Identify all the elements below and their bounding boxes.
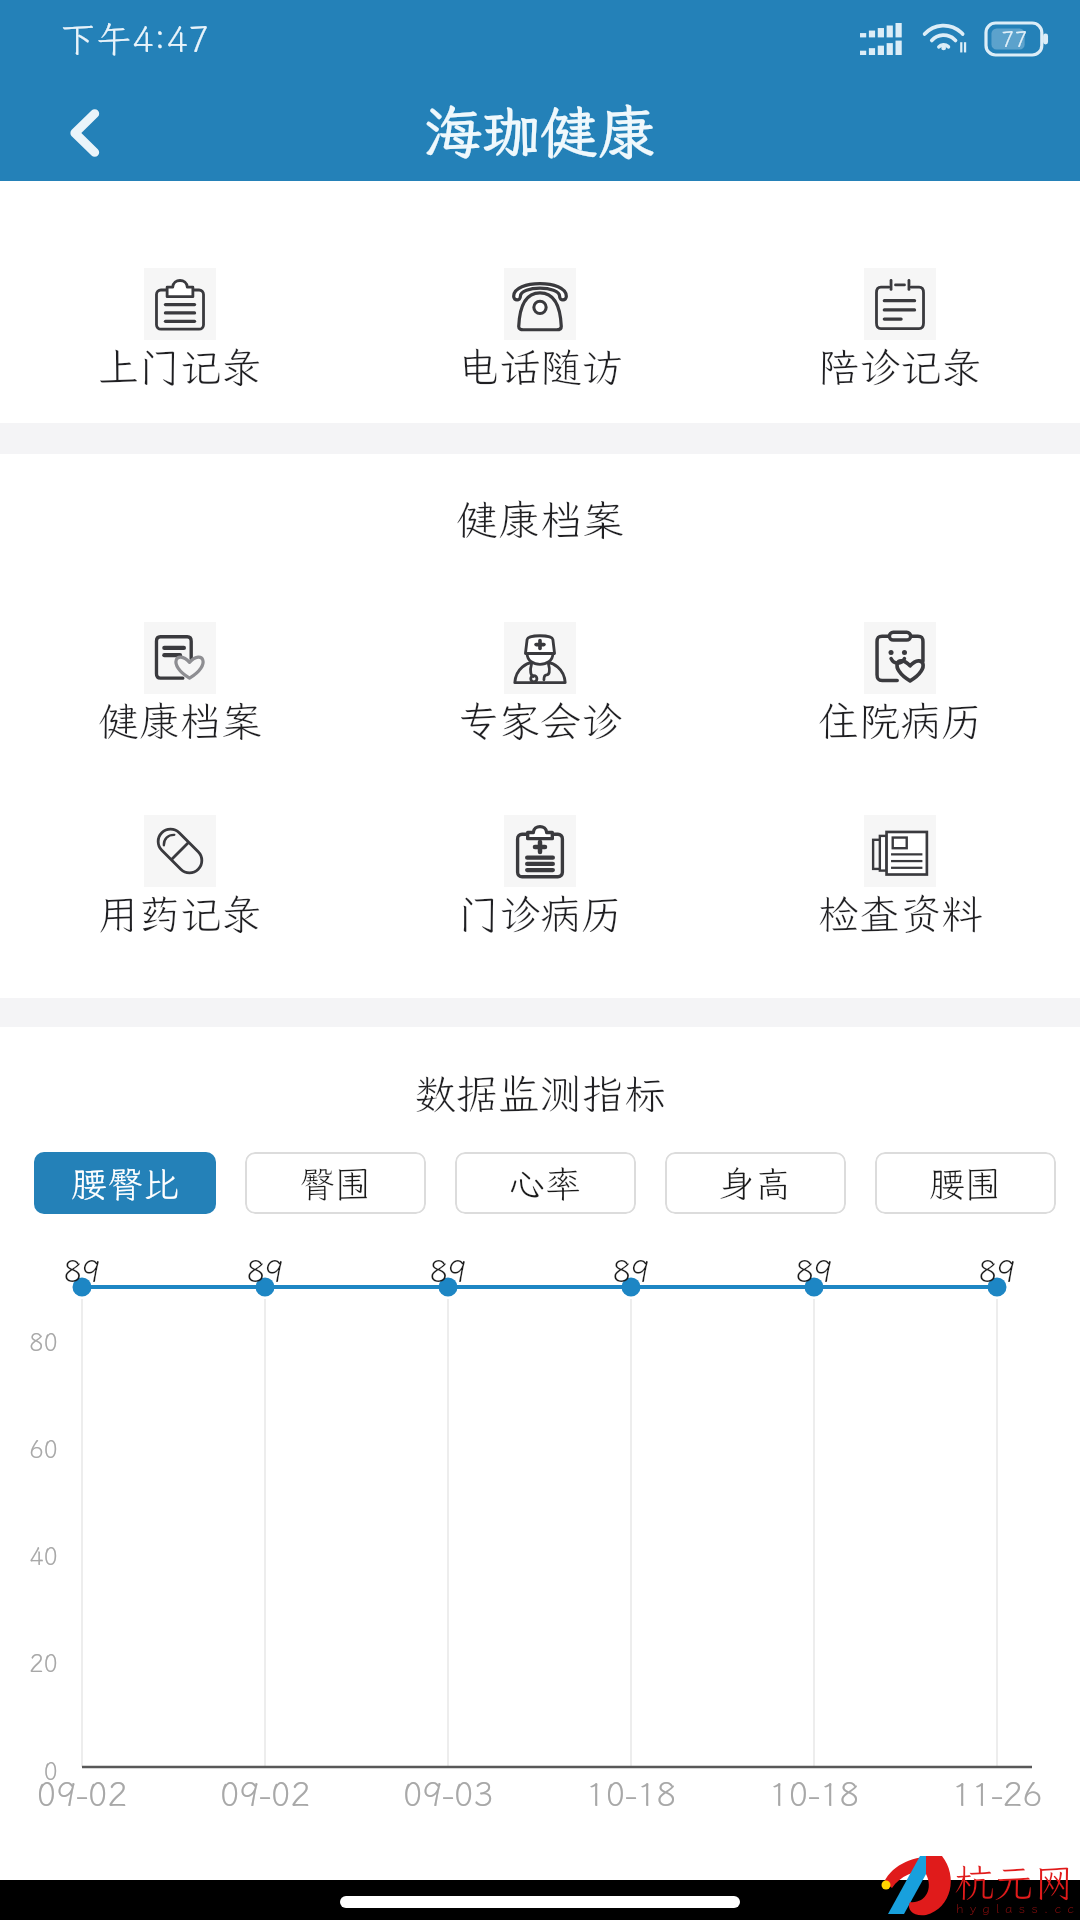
button[interactable]: 上门记录 <box>70 260 290 390</box>
button[interactable]: 住院病历 <box>790 614 1010 744</box>
button[interactable]: 腰臀比 <box>34 1152 216 1214</box>
staticText: 电话随访 <box>458 340 622 390</box>
staticText: 89 <box>225 1250 305 1291</box>
staticText: 80 <box>0 1326 58 1358</box>
button[interactable]: 腰围 <box>875 1152 1056 1214</box>
staticText: 杭元网 <box>954 1856 1074 1909</box>
staticText: 数据监测指标 <box>0 1066 1080 1121</box>
staticText: 11-26 <box>917 1772 1077 1815</box>
staticText: 健康档案 <box>0 492 1080 547</box>
button[interactable]: 用药记录 <box>70 807 290 937</box>
staticText: 10-18 <box>551 1772 711 1815</box>
staticText: 上门记录 <box>98 340 262 390</box>
staticText: 健康档案 <box>98 694 262 744</box>
button[interactable]: 心率 <box>455 1152 636 1214</box>
staticText: 09-02 <box>2 1772 162 1815</box>
staticText: 检查资料 <box>818 887 982 937</box>
staticText: 89 <box>42 1250 122 1291</box>
button[interactable]: 电话随访 <box>430 260 650 390</box>
staticText: 下午4:47 <box>60 15 210 62</box>
button[interactable]: Back <box>30 85 140 181</box>
staticText: 77 <box>1001 24 1028 53</box>
staticText: 0 <box>0 1755 58 1787</box>
button[interactable]: 检查资料 <box>790 807 1010 937</box>
staticText: 09-03 <box>368 1772 528 1815</box>
staticText: 89 <box>774 1250 854 1291</box>
staticText: 09-02 <box>185 1772 345 1815</box>
staticText: 用药记录 <box>98 887 262 937</box>
staticText: 腰臀比 <box>71 1160 180 1207</box>
staticText: 20 <box>0 1647 58 1679</box>
staticText: 40 <box>0 1540 58 1572</box>
button[interactable]: 专家会诊 <box>430 614 650 744</box>
staticText: 心率 <box>509 1160 582 1207</box>
staticText: 腰围 <box>929 1160 1002 1207</box>
staticText: 60 <box>0 1433 58 1465</box>
staticText: 门诊病历 <box>458 887 622 937</box>
staticText: 臀围 <box>299 1160 372 1207</box>
staticText: 住院病历 <box>818 694 982 744</box>
staticText: 专家会诊 <box>458 694 622 744</box>
button[interactable]: 门诊病历 <box>430 807 650 937</box>
staticText: hyglass.cc <box>956 1900 1080 1917</box>
staticText: 海珈健康 <box>424 93 657 169</box>
staticText: 陪诊记录 <box>818 340 982 390</box>
staticText: 89 <box>408 1250 488 1291</box>
staticText: 89 <box>591 1250 671 1291</box>
staticText: 10-18 <box>734 1772 894 1815</box>
button[interactable]: 陪诊记录 <box>790 260 1010 390</box>
staticText: 身高 <box>719 1160 792 1207</box>
button[interactable]: 臀围 <box>245 1152 426 1214</box>
button[interactable]: 健康档案 <box>70 614 290 744</box>
staticText: 89 <box>957 1250 1037 1291</box>
button[interactable]: 身高 <box>665 1152 846 1214</box>
